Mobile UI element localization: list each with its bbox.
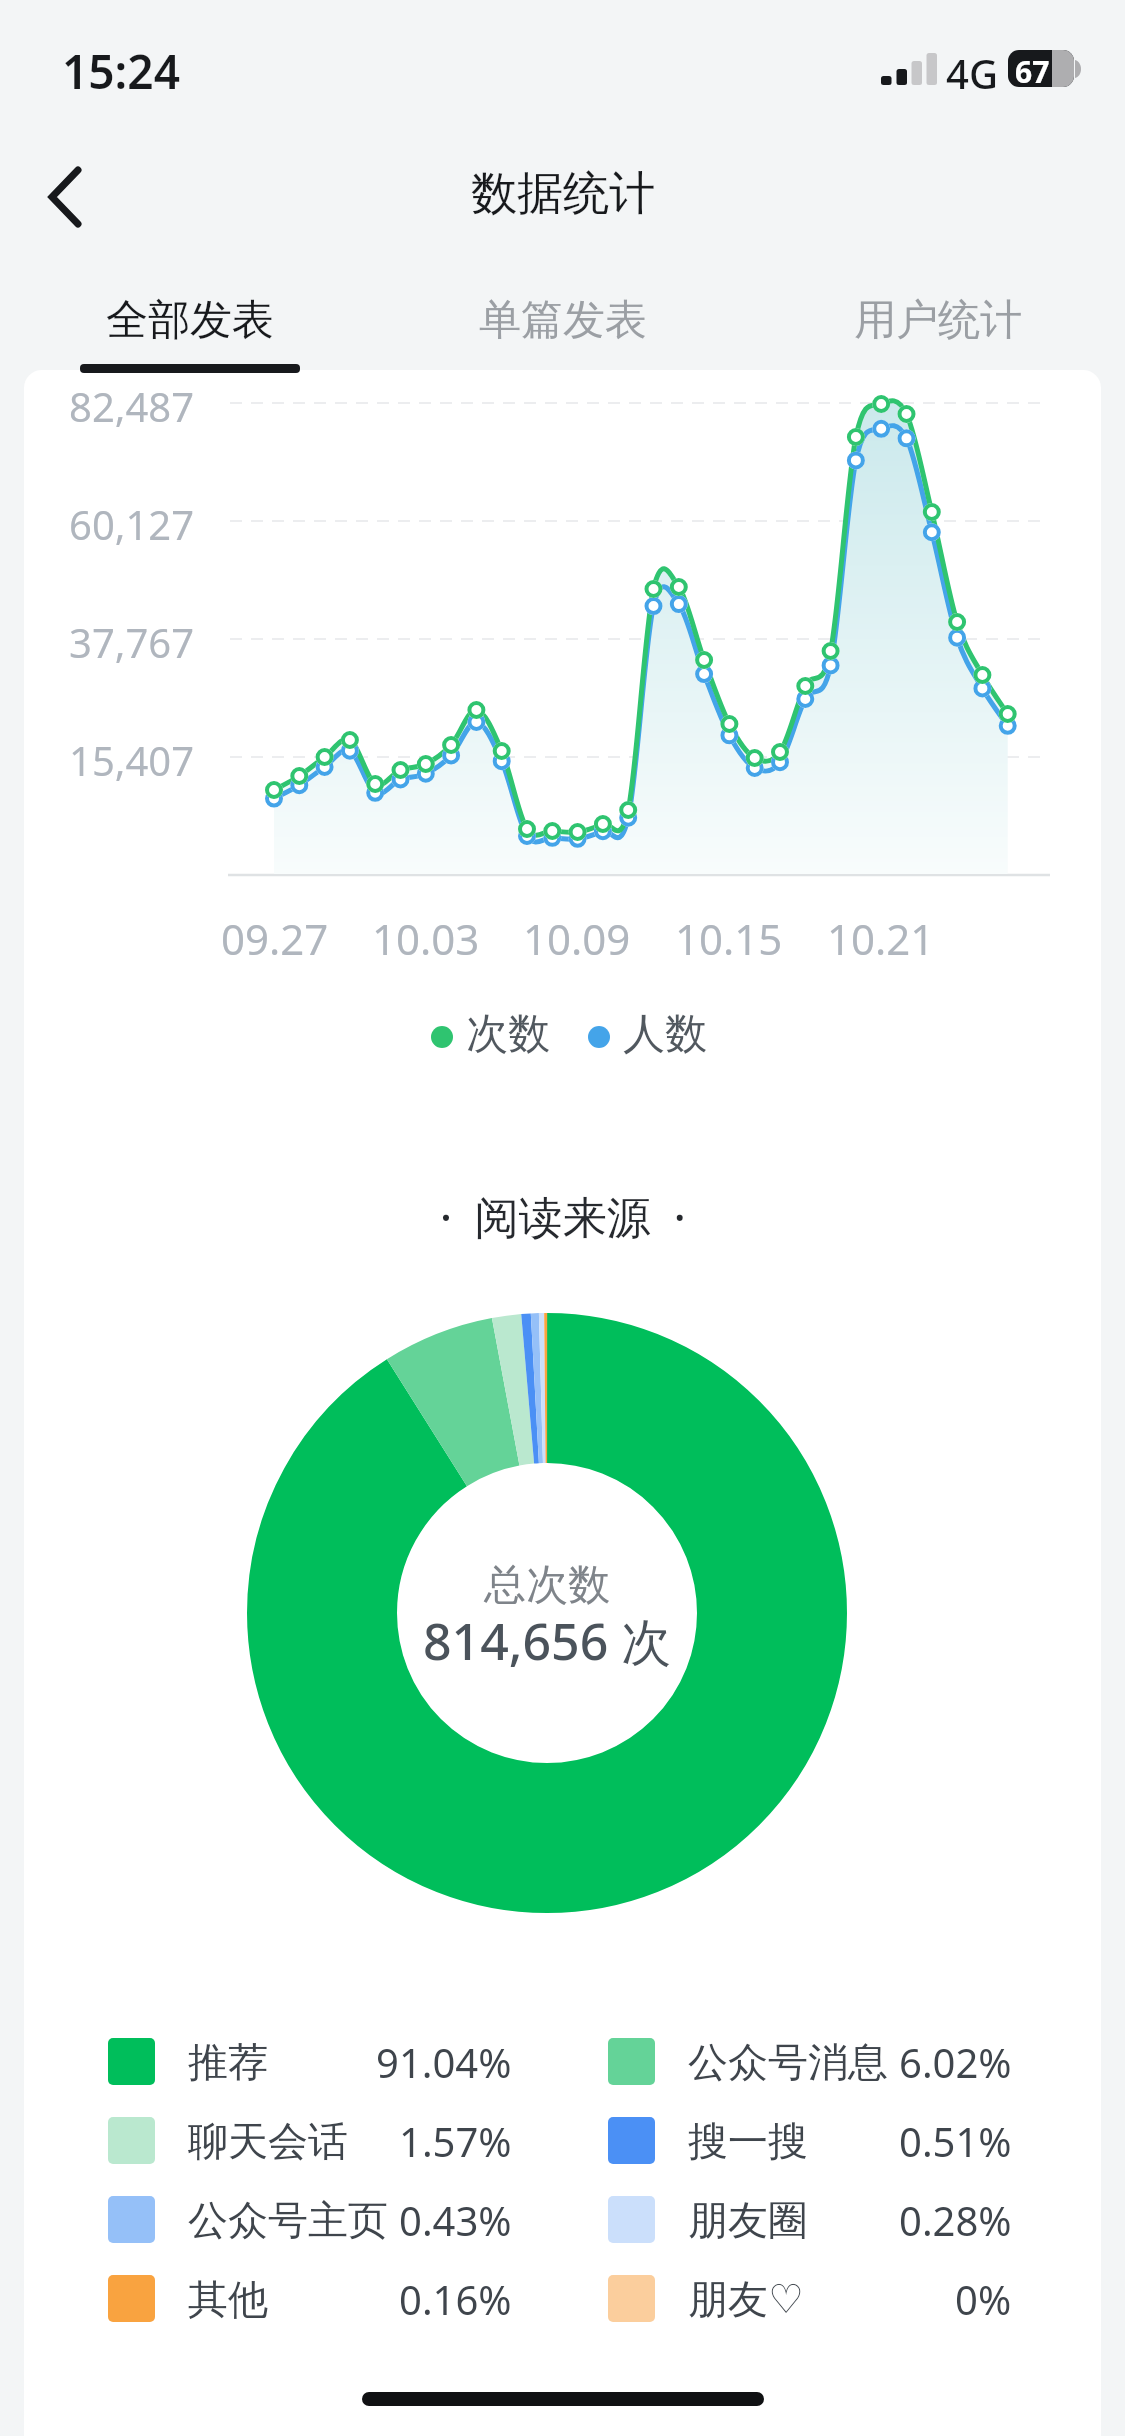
staticText: 数据统计	[471, 165, 655, 223]
staticText: 0.28%	[899, 2193, 1012, 2247]
staticText: 聊天会话	[188, 2116, 348, 2166]
staticText: 37,767	[69, 615, 195, 663]
button[interactable]: 单篇发表	[463, 280, 663, 360]
staticText: 朋友♡	[688, 2274, 804, 2324]
staticText: 全部发表	[106, 294, 274, 347]
staticText: 10.21	[827, 910, 935, 960]
staticText: 0.16%	[399, 2272, 512, 2326]
staticText: 0.43%	[399, 2193, 512, 2247]
staticText: 0.51%	[899, 2114, 1012, 2168]
staticText: 4G	[946, 46, 998, 100]
staticText: 10.15	[675, 910, 783, 960]
staticText: 814,656 次	[423, 1607, 672, 1675]
staticText: 单篇发表	[479, 294, 647, 347]
staticText: 91.04%	[376, 2035, 512, 2089]
staticText: 10.09	[523, 910, 631, 960]
staticText: 1.57%	[399, 2114, 512, 2168]
staticText: 10.03	[372, 910, 480, 960]
staticText: 人数	[623, 1008, 707, 1061]
staticText: 82,487	[69, 379, 195, 427]
staticText: 朋友圈	[688, 2195, 808, 2245]
staticText: 15,407	[69, 733, 195, 781]
staticText: 次数	[466, 1008, 550, 1061]
staticText: 09.27	[221, 910, 329, 960]
staticText: 0%	[955, 2272, 1012, 2326]
staticText: 用户统计	[854, 294, 1022, 347]
button[interactable]: 全部发表	[90, 280, 290, 360]
button[interactable]: 用户统计	[838, 280, 1038, 360]
staticText: 67	[1015, 51, 1050, 87]
staticText: 60,127	[69, 497, 195, 545]
staticText: 推荐	[188, 2037, 268, 2087]
staticText: 15:24	[62, 40, 180, 103]
staticText: 总次数	[484, 1559, 610, 1612]
button[interactable]	[30, 155, 110, 235]
staticText: · 阅读来源 ·	[440, 1186, 686, 1246]
staticText: 公众号主页	[188, 2195, 388, 2245]
staticText: 其他	[188, 2274, 268, 2324]
staticText: 搜一搜	[688, 2116, 808, 2166]
staticText: 6.02%	[899, 2035, 1012, 2089]
staticText: 公众号消息	[688, 2037, 888, 2087]
